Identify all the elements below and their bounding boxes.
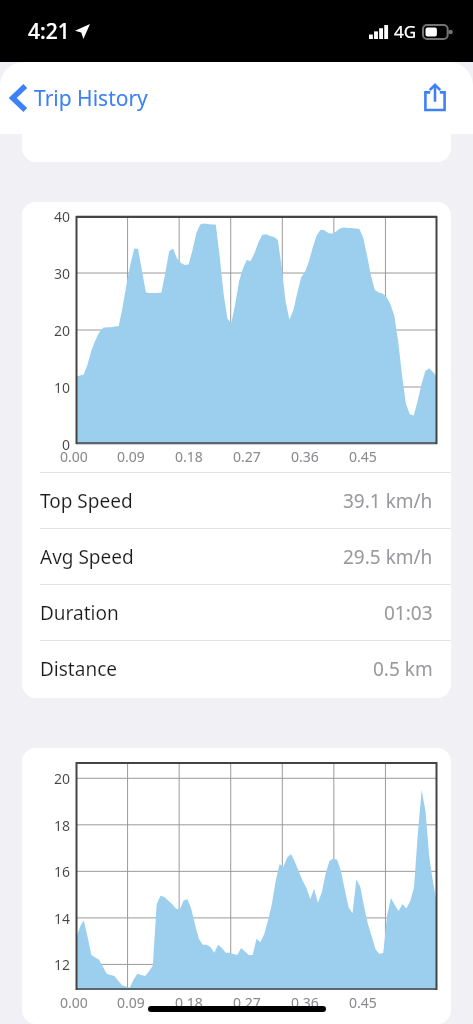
staticText: 0.18 — [175, 447, 203, 466]
staticText: 10 — [34, 378, 70, 397]
staticText: 20 — [34, 321, 70, 340]
staticText: Distance — [40, 656, 117, 682]
staticText: 40 — [34, 207, 70, 226]
staticText: 0.09 — [117, 993, 145, 1012]
staticText: 30 — [34, 264, 70, 283]
staticText: 20 — [34, 769, 70, 788]
button[interactable]: Top Speed — [22, 472, 451, 528]
staticText: 4:21 — [28, 17, 70, 46]
staticText: 0.00 — [60, 447, 88, 466]
staticText: 0.5 km — [373, 656, 433, 682]
staticText: 18 — [34, 816, 70, 835]
button[interactable]: Avg Speed — [22, 528, 451, 584]
staticText: Avg Speed — [40, 544, 134, 570]
staticText: 4G — [394, 20, 417, 43]
staticText: Top Speed — [40, 488, 133, 514]
staticText: 0.36 — [291, 993, 319, 1012]
button[interactable]: 12 — [22, 748, 451, 1024]
staticText: 14 — [34, 909, 70, 928]
staticText: Duration — [40, 600, 119, 626]
button[interactable]: 0 — [22, 202, 451, 698]
staticText: 0.27 — [233, 993, 261, 1012]
staticText: 29.5 km/h — [343, 544, 433, 570]
button[interactable]: Trip History — [0, 74, 160, 122]
staticText: 0.09 — [117, 447, 145, 466]
staticText: 0.45 — [349, 993, 377, 1012]
button[interactable]: Duration — [22, 584, 451, 640]
button[interactable]: Share — [413, 76, 457, 120]
button[interactable]: Distance — [22, 640, 451, 696]
staticText: 0 — [34, 435, 70, 454]
staticText: 0.18 — [175, 993, 203, 1012]
staticText: 0.36 — [291, 447, 319, 466]
staticText: 16 — [34, 862, 70, 881]
staticText: 12 — [34, 955, 70, 974]
staticText: 39.1 km/h — [343, 488, 433, 514]
staticText: 01:03 — [384, 600, 433, 626]
staticText: 0.45 — [349, 447, 377, 466]
staticText: Trip History — [34, 84, 148, 113]
staticText: 0.00 — [60, 993, 88, 1012]
staticText: 0.27 — [233, 447, 261, 466]
